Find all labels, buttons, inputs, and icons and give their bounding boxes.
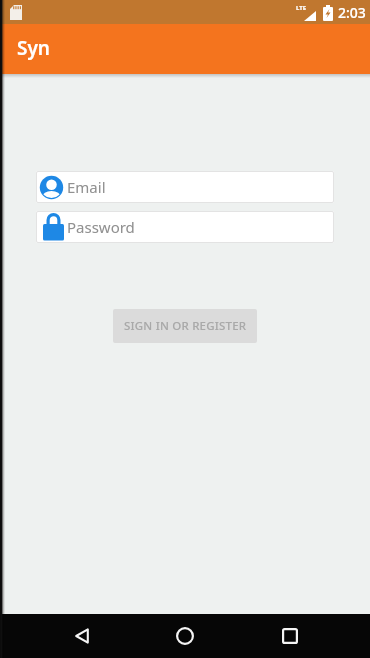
staticText: Syn (17, 35, 50, 61)
button[interactable] (75, 628, 89, 644)
button[interactable] (282, 628, 298, 644)
button[interactable]: SIGN IN OR REGISTER (113, 309, 257, 343)
button[interactable]: Password (36, 211, 334, 243)
staticText: Email (67, 177, 106, 197)
button[interactable] (176, 627, 194, 645)
staticText: SIGN IN OR REGISTER (124, 318, 247, 334)
staticText: Password (67, 217, 135, 237)
button[interactable]: Email (36, 171, 334, 203)
staticText: LTE (296, 4, 307, 12)
staticText: 2:03 (338, 3, 366, 22)
